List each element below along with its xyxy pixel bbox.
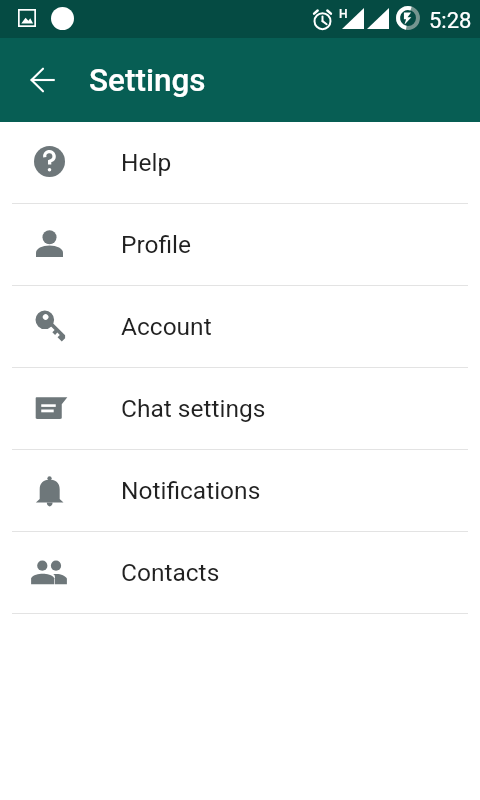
button[interactable]: Notifications [0, 450, 480, 531]
button[interactable]: Profile [0, 204, 480, 285]
button[interactable]: Chat settings [0, 368, 480, 449]
button[interactable]: Contacts [0, 532, 480, 613]
staticText: Notifications [121, 476, 261, 505]
button[interactable]: Back [18, 56, 66, 104]
staticText: H [339, 7, 348, 21]
staticText: Help [121, 148, 172, 177]
button[interactable]: Account [0, 286, 480, 367]
staticText: Chat settings [121, 394, 266, 423]
button[interactable]: Help [0, 122, 480, 203]
staticText: Settings [89, 62, 206, 99]
staticText: Profile [121, 230, 192, 259]
staticText: Contacts [121, 558, 220, 587]
staticText: Account [121, 312, 212, 341]
staticText: 5:28 [429, 8, 472, 34]
